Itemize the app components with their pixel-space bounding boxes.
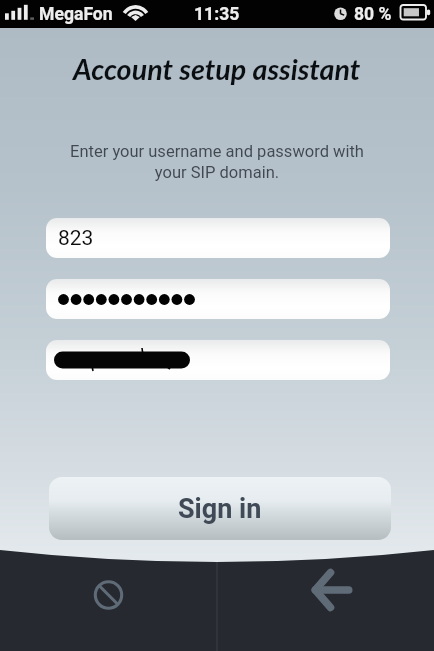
button[interactable] <box>46 340 390 380</box>
button[interactable]: 823 <box>46 218 390 258</box>
staticText: Sign in <box>178 493 262 525</box>
staticText: 11:35 <box>194 4 240 25</box>
button[interactable] <box>46 279 390 319</box>
button[interactable]: Back <box>217 544 434 651</box>
staticText: MegaFon <box>39 4 113 25</box>
button[interactable]: Cancel <box>0 544 217 651</box>
staticText: Account setup assistant <box>73 52 361 86</box>
staticText: 823 <box>58 226 94 251</box>
staticText: 80 % <box>354 4 392 25</box>
button[interactable]: Sign in <box>49 477 391 540</box>
staticText: Enter your username and password with yo… <box>66 142 368 182</box>
